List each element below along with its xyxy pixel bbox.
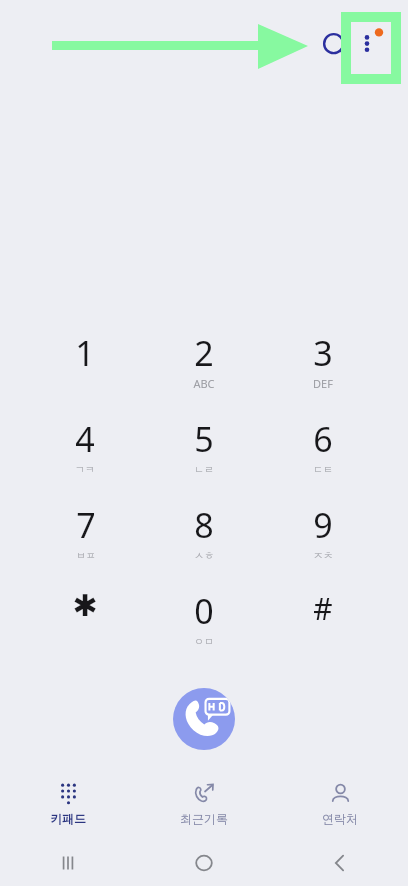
staticText: 8: [194, 502, 214, 548]
staticText: ㄱㅋ: [75, 463, 95, 476]
button[interactable]: 9: [263, 502, 382, 564]
button[interactable]: 키패드: [0, 775, 136, 837]
button[interactable]: 1: [26, 330, 144, 392]
staticText: ㅂㅍ: [76, 549, 96, 562]
button[interactable]: 7: [26, 502, 144, 564]
button[interactable]: 3: [263, 330, 382, 392]
staticText: 5: [194, 416, 214, 462]
button[interactable]: Back: [272, 840, 408, 886]
button[interactable]: 5: [144, 416, 263, 478]
staticText: ㅈㅊ: [313, 549, 333, 562]
staticText: 최근기록: [180, 811, 228, 826]
staticText: ㄷㅌ: [313, 463, 333, 476]
button[interactable]: #: [263, 588, 382, 650]
button[interactable]: 6: [263, 416, 382, 478]
button[interactable]: More options: [351, 22, 391, 62]
staticText: 4: [75, 416, 95, 462]
staticText: 0: [194, 588, 214, 634]
staticText: ✱: [72, 588, 98, 623]
button[interactable]: 연락처: [272, 775, 408, 837]
staticText: 6: [313, 416, 333, 462]
button[interactable]: Search: [316, 28, 350, 62]
button[interactable]: 0: [144, 588, 263, 650]
staticText: ㄴㄹ: [194, 463, 214, 476]
button[interactable]: 8: [144, 502, 263, 564]
staticText: 키패드: [50, 811, 86, 826]
button[interactable]: Call: [173, 688, 235, 750]
staticText: 2: [194, 330, 214, 376]
button[interactable]: 2: [144, 330, 263, 392]
staticText: 9: [313, 502, 333, 548]
staticText: DEF: [313, 376, 333, 391]
button[interactable]: Home: [136, 840, 272, 886]
button[interactable]: Recent apps: [0, 840, 136, 886]
button[interactable]: ✱: [26, 588, 144, 650]
staticText: #: [313, 588, 333, 629]
staticText: 3: [313, 330, 333, 376]
button[interactable]: 최근기록: [136, 775, 272, 837]
button[interactable]: 4: [26, 416, 144, 478]
staticText: 1: [75, 330, 95, 376]
staticText: ABC: [193, 376, 215, 391]
staticText: 연락처: [322, 811, 358, 826]
staticText: ㅅㅎ: [194, 549, 214, 562]
staticText: ㅇㅁ: [194, 635, 214, 648]
staticText: 7: [76, 502, 96, 548]
